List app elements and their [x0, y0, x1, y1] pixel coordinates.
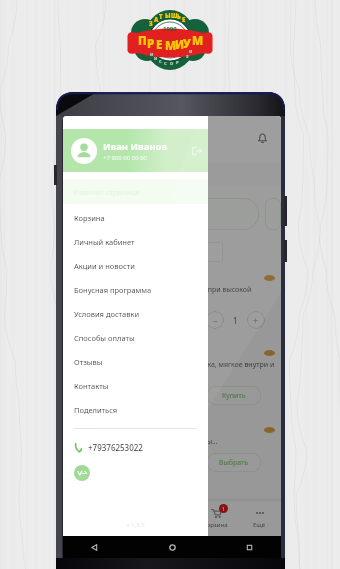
staticText: Корзина: [74, 213, 105, 223]
button[interactable]: +: [247, 311, 265, 329]
button[interactable]: Корзина: [193, 500, 237, 536]
staticText: Условия доставки: [74, 309, 140, 319]
staticText: Выбрать: [219, 458, 249, 468]
button[interactable]: Блюдо дня: [69, 198, 259, 230]
staticText: 1: [222, 505, 226, 512]
staticText: +7 900 00 00 00: [103, 154, 147, 162]
staticText: Иван Иванов: [103, 140, 168, 153]
staticText: Способы оплаты: [74, 333, 135, 343]
staticText: Е: [156, 37, 163, 53]
staticText: Т: [159, 13, 163, 21]
staticText: Ь: [177, 13, 181, 21]
staticText: Купить: [222, 391, 246, 401]
staticText: З: [149, 20, 153, 28]
button[interactable]: Back: [89, 542, 100, 553]
button[interactable]: Способы оплаты: [63, 326, 208, 350]
staticText: Ы: [165, 12, 171, 20]
staticText: У: [183, 36, 191, 52]
button[interactable]: Recents: [244, 542, 255, 553]
staticText: v 1.3.5: [126, 521, 145, 529]
staticText: Е: [182, 16, 186, 24]
staticText: Ш: [171, 12, 178, 20]
staticText: Р: [176, 60, 179, 66]
staticText: И: [150, 52, 154, 58]
staticText: Контакты: [74, 381, 109, 391]
button[interactable]: Поделиться: [63, 398, 208, 422]
staticText: Наша пицца готовится в каменной печи при…: [69, 285, 275, 305]
staticText: Изменить: [131, 170, 170, 181]
staticText: Большое ассорти из сыров разнообразны...: [69, 437, 218, 447]
staticText: 1999: [163, 25, 177, 33]
staticText: +: [253, 314, 259, 326]
staticText: 1: [233, 315, 238, 326]
staticText: П: [138, 33, 147, 49]
staticText: Личный кабинет: [74, 237, 135, 247]
staticText: ул. Ленина, 8: [69, 170, 123, 181]
staticText: И: [175, 37, 185, 53]
staticText: О: [170, 61, 174, 67]
staticText: Р: [147, 36, 155, 52]
staticText: М: [192, 33, 204, 49]
button[interactable]: +79376253022: [74, 442, 143, 453]
button[interactable]: Home: [167, 542, 178, 553]
button[interactable]: Log out: [192, 146, 202, 156]
staticText: Отзывы: [74, 357, 103, 367]
staticText: С: [159, 59, 162, 65]
staticText: –: [213, 314, 218, 326]
staticText: Корзина: [203, 521, 228, 529]
button[interactable]: Личный кабинет: [63, 230, 208, 254]
button[interactable]: Условия доставки: [63, 302, 208, 326]
button[interactable]: Выбрать: [207, 453, 261, 472]
staticText: Деревенская чиабатта: хрустящая корочка,…: [69, 360, 275, 380]
button[interactable]: VKontakte: [74, 465, 90, 481]
staticText: Бонусная программа: [74, 285, 152, 295]
button[interactable]: Корзина: [63, 206, 208, 230]
button[interactable]: NEW: [69, 242, 131, 262]
button[interactable]: Купить: [207, 386, 261, 405]
staticText: Ещё: [253, 521, 266, 529]
staticText: З: [186, 54, 189, 60]
staticText: И: [154, 56, 158, 62]
staticText: Акции и новости: [74, 261, 135, 271]
button[interactable]: Ещё: [237, 500, 281, 536]
staticText: Главная страница: [74, 187, 140, 197]
staticText: М: [165, 38, 177, 54]
staticText: +79376253022: [88, 442, 143, 453]
button[interactable]: Notifications: [256, 132, 269, 145]
staticText: И: [189, 49, 193, 55]
button[interactable]: Бонусная программа: [63, 278, 208, 302]
button[interactable]: –: [206, 311, 224, 329]
staticText: Сырная тарелка: [69, 424, 137, 435]
staticText: Поделиться: [74, 405, 118, 415]
staticText: А: [154, 16, 159, 24]
staticText: Акции: [118, 521, 137, 529]
staticText: С: [164, 61, 167, 67]
button[interactable]: Акции и новости: [63, 254, 208, 278]
button[interactable]: Контакты: [63, 374, 208, 398]
button[interactable]: Отзывы: [63, 350, 208, 374]
